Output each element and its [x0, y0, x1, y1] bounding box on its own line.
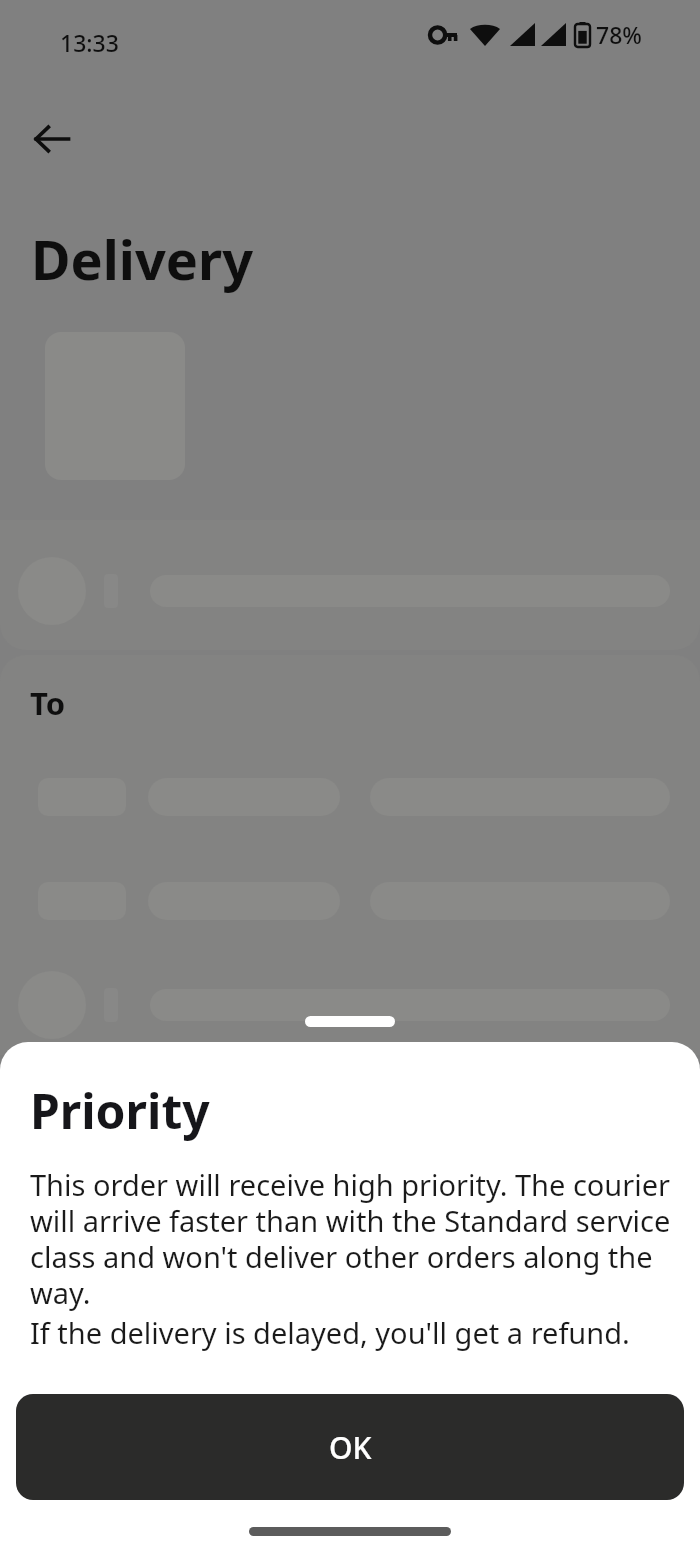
button[interactable]: Drag handle: [305, 1016, 395, 1027]
button[interactable]: Back: [20, 107, 84, 171]
staticText: 78%: [596, 19, 642, 50]
staticText: To: [30, 682, 66, 724]
staticText: Delivery: [31, 222, 254, 296]
button[interactable]: OK: [16, 1394, 684, 1500]
staticText: OK: [329, 1427, 372, 1468]
staticText: 13:33: [60, 27, 119, 58]
staticText: If the delivery is delayed, you'll get a…: [30, 1313, 630, 1352]
staticText: This order will receive high priority. T…: [30, 1165, 674, 1313]
staticText: Priority: [30, 1078, 210, 1143]
